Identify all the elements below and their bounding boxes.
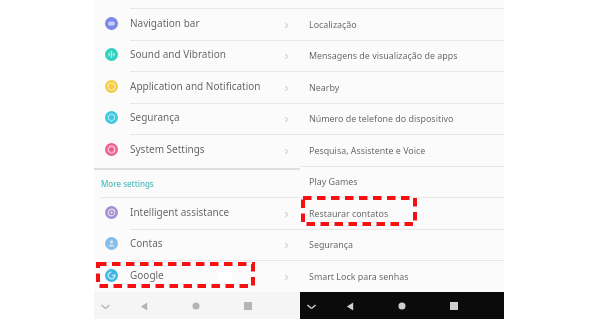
staticText: Play Games	[309, 175, 358, 187]
button[interactable]: Hide keyboard	[304, 299, 318, 313]
button[interactable]: Contas	[94, 229, 300, 261]
button[interactable]: Recents	[447, 299, 461, 313]
button[interactable]: Nearby	[300, 72, 504, 104]
button[interactable]: Home	[395, 299, 409, 313]
button[interactable]: Mensagens de visualização de apps	[300, 40, 504, 72]
staticText: Navigation bar	[130, 16, 200, 30]
button[interactable]: System Settings	[94, 135, 300, 167]
button[interactable]: Play Games	[300, 166, 504, 198]
button[interactable]: Pesquisa, Assistente e Voice	[300, 135, 504, 167]
staticText: Google	[130, 268, 164, 282]
button[interactable]: Localização	[300, 9, 504, 41]
staticText: System Settings	[130, 142, 205, 156]
button[interactable]: Segurança	[300, 229, 504, 261]
staticText: Número de telefone do dispositivo	[309, 112, 454, 124]
staticText: Restaurar contatos	[309, 207, 389, 219]
staticText: Intelligent assistance	[130, 205, 230, 219]
staticText: Sound and Vibration	[130, 47, 226, 61]
button[interactable]: Back	[343, 299, 357, 313]
staticText: Pesquisa, Assistente e Voice	[309, 144, 426, 156]
button[interactable]: Smart Lock para senhas	[300, 261, 504, 293]
button[interactable]: Sound and Vibration	[94, 40, 300, 72]
button[interactable]: Navigation bar	[94, 9, 300, 41]
button[interactable]: Home	[189, 299, 203, 313]
staticText: Localização	[309, 18, 357, 30]
staticText: Application and Notification	[130, 79, 261, 93]
button[interactable]: Application and Notification	[94, 72, 300, 104]
staticText: Mensagens de visualização de apps	[309, 49, 458, 61]
button[interactable]: Número de telefone do dispositivo	[300, 103, 504, 135]
button[interactable]: Segurança	[94, 103, 300, 135]
button[interactable]: Recents	[241, 299, 255, 313]
button[interactable]: Hide keyboard	[98, 299, 112, 313]
button[interactable]: Google	[94, 261, 300, 293]
staticText: Nearby	[309, 81, 340, 93]
staticText: Contas	[130, 236, 163, 250]
staticText: Smart Lock para senhas	[309, 270, 409, 282]
staticText: Segurança	[130, 110, 180, 124]
button[interactable]: Back	[137, 299, 151, 313]
button[interactable]: Intelligent assistance	[94, 198, 300, 230]
staticText: Segurança	[309, 238, 354, 250]
staticText: More settings	[101, 178, 154, 189]
button[interactable]: Restaurar contatos	[300, 198, 504, 230]
